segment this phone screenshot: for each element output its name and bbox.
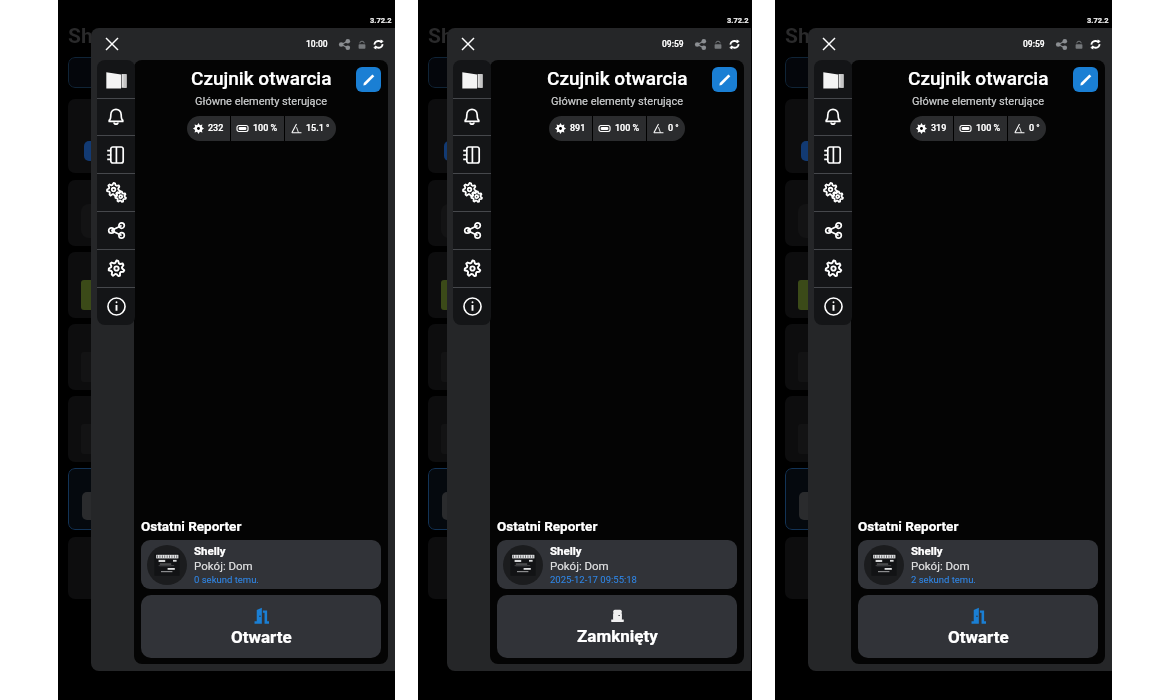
button[interactable]: Lock xyxy=(353,36,370,53)
button[interactable]: Otwarte xyxy=(141,595,381,658)
staticText: Otwarte xyxy=(948,627,1009,647)
staticText: 891 xyxy=(570,123,586,134)
staticText: 100 % xyxy=(976,123,1001,134)
button[interactable]: Info xyxy=(97,288,135,325)
button[interactable]: Device xyxy=(453,60,491,98)
staticText: 09:59 xyxy=(1023,39,1045,49)
staticText: Zamknięty xyxy=(577,626,658,646)
staticText: Pokój: Dom xyxy=(911,559,970,572)
staticText: 15.1 ° xyxy=(306,123,330,134)
button[interactable]: Notifications xyxy=(814,99,852,135)
button[interactable]: Schedule xyxy=(453,136,491,173)
button[interactable]: Shelly xyxy=(858,540,1098,589)
staticText: Czujnik otwarcia xyxy=(191,67,332,89)
staticText: W xyxy=(958,67,967,79)
button[interactable]: Share xyxy=(692,36,709,53)
staticText: Główne elementy sterujące xyxy=(912,95,1045,108)
staticText: Czujnik otwarcia xyxy=(908,67,1049,89)
button[interactable]: Refresh xyxy=(726,36,743,53)
button[interactable]: Info xyxy=(814,288,852,325)
staticText: Ostatni Reporter xyxy=(497,518,598,534)
staticText: Shelly xyxy=(911,544,943,557)
button[interactable]: Share xyxy=(97,212,135,249)
staticText: 3.72.2 xyxy=(370,16,392,25)
button[interactable]: Otwarte xyxy=(858,595,1098,658)
staticText: 3.72.2 xyxy=(1087,16,1109,25)
staticText: W xyxy=(241,67,250,79)
staticText: 100 % xyxy=(615,123,640,134)
button[interactable]: Lock xyxy=(1070,36,1087,53)
button[interactable]: Notifications xyxy=(97,99,135,135)
button[interactable]: Shelly xyxy=(141,540,381,589)
staticText: W xyxy=(599,67,608,79)
staticText: 100 % xyxy=(253,123,278,134)
staticText: 3.72.2 xyxy=(727,16,749,25)
button[interactable]: Lock xyxy=(709,36,726,53)
staticText: 2025-12-17 09:55:18 xyxy=(550,574,637,585)
button[interactable]: Share xyxy=(1053,36,1070,53)
staticText: Pokój: Dom xyxy=(550,559,609,572)
button[interactable]: Share xyxy=(814,212,852,249)
staticText: Główne elementy sterujące xyxy=(551,95,684,108)
staticText: Shelly xyxy=(785,24,843,49)
staticText: Główne elementy sterujące xyxy=(195,95,328,108)
staticText: 232 xyxy=(208,123,224,134)
staticText: Ostatni Reporter xyxy=(141,518,242,534)
button[interactable]: Shelly xyxy=(497,540,737,589)
button[interactable]: Share xyxy=(336,36,353,53)
button[interactable]: Edit xyxy=(1073,67,1098,92)
button[interactable]: Settings xyxy=(453,250,491,287)
button[interactable]: Actions xyxy=(814,174,852,211)
staticText: Pokój: Dom xyxy=(194,559,253,572)
staticText: Otwarte xyxy=(231,627,292,647)
button[interactable]: Edit xyxy=(356,67,381,92)
button[interactable]: Zamknięty xyxy=(497,595,737,658)
staticText: Shelly xyxy=(68,24,126,49)
button[interactable]: Close xyxy=(818,33,840,55)
button[interactable]: Share xyxy=(453,212,491,249)
staticText: 0 sekund temu. xyxy=(194,574,259,585)
button[interactable]: Schedule xyxy=(97,136,135,173)
staticText: 09:59 xyxy=(662,39,684,49)
button[interactable]: Device xyxy=(97,60,135,98)
staticText: 319 xyxy=(931,123,947,134)
button[interactable]: Close xyxy=(457,33,479,55)
staticText: 10:00 xyxy=(306,39,328,49)
staticText: Czujnik otwarcia xyxy=(547,67,688,89)
staticText: Ostatni Reporter xyxy=(858,518,959,534)
button[interactable]: Settings xyxy=(97,250,135,287)
button[interactable]: Actions xyxy=(453,174,491,211)
staticText: Shelly xyxy=(550,544,582,557)
button[interactable]: Refresh xyxy=(1087,36,1104,53)
button[interactable]: Notifications xyxy=(453,99,491,135)
button[interactable]: Settings xyxy=(814,250,852,287)
button[interactable]: Info xyxy=(453,288,491,325)
button[interactable]: Actions xyxy=(97,174,135,211)
staticText: Shelly xyxy=(428,24,486,49)
button[interactable]: Edit xyxy=(712,67,737,92)
staticText: 0 ° xyxy=(668,123,679,134)
button[interactable]: Close xyxy=(101,33,123,55)
staticText: 2 sekund temu. xyxy=(911,574,976,585)
button[interactable]: Refresh xyxy=(370,36,387,53)
button[interactable]: Schedule xyxy=(814,136,852,173)
button[interactable]: Device xyxy=(814,60,852,98)
staticText: 0 ° xyxy=(1029,123,1040,134)
staticText: Shelly xyxy=(194,544,226,557)
